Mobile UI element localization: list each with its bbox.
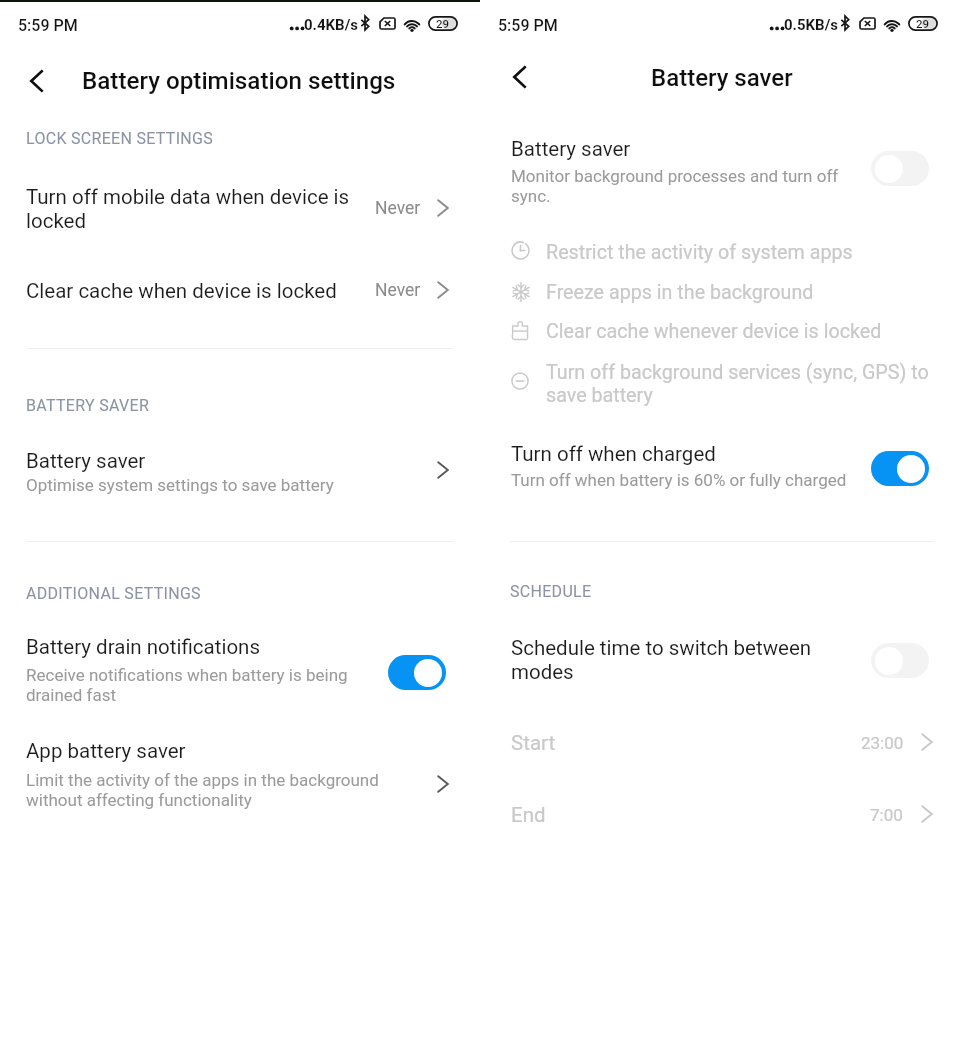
staticText: Turn off mobile data when device is lock…	[26, 185, 356, 233]
button[interactable]: Back	[497, 55, 541, 99]
staticText: App battery saver	[26, 739, 366, 763]
button[interactable]: On	[871, 451, 929, 486]
staticText: LOCK SCREEN SETTINGS	[26, 129, 326, 148]
staticText: Battery optimisation settings	[82, 67, 422, 95]
staticText: 29	[436, 17, 450, 30]
button[interactable]: Off	[871, 151, 929, 186]
staticText: 23:00	[861, 733, 931, 753]
staticText: Never	[375, 280, 445, 301]
staticText: Monitor background processes and turn of…	[511, 166, 846, 206]
staticText: Turn off when battery is 60% or fully ch…	[511, 470, 871, 490]
staticText: Freeze apps in the background	[546, 281, 946, 304]
staticText: 7:00	[870, 805, 940, 825]
staticText: End	[511, 803, 711, 827]
staticText: 5:59 PM	[18, 16, 138, 35]
staticText: 5:59 PM	[498, 16, 618, 35]
staticText: BATTERY SAVER	[26, 396, 326, 415]
staticText: Start	[511, 731, 711, 755]
staticText: Turn off background services (sync, GPS)…	[546, 361, 946, 406]
staticText: Battery saver	[651, 64, 831, 92]
staticText: Receive notifications when battery is be…	[26, 665, 356, 705]
staticText: Limit the activity of the apps in the ba…	[26, 770, 383, 810]
button[interactable]: On	[388, 655, 446, 690]
staticText: 29	[916, 17, 930, 30]
staticText: Schedule time to switch between modes	[511, 636, 831, 684]
staticText: Battery drain notifications	[26, 635, 366, 659]
button[interactable]	[0, 724, 480, 822]
staticText: 0.4KB/s	[304, 16, 374, 34]
button[interactable]	[480, 120, 960, 208]
button[interactable]	[480, 714, 960, 772]
staticText: Clear cache when device is locked	[26, 279, 366, 303]
staticText: Never	[375, 198, 445, 219]
staticText: ADDITIONAL SETTINGS	[26, 584, 326, 603]
staticText: Restrict the activity of system apps	[546, 241, 946, 264]
button[interactable]: Off	[871, 643, 929, 678]
staticText: 0.5KB/s	[784, 16, 854, 34]
staticText: Battery saver	[26, 449, 366, 473]
button[interactable]	[480, 620, 960, 704]
button[interactable]	[480, 432, 960, 508]
button[interactable]	[0, 430, 480, 512]
staticText: Turn off when charged	[511, 442, 851, 466]
button[interactable]	[480, 786, 960, 844]
button[interactable]: Back	[14, 59, 58, 103]
staticText: SCHEDULE	[510, 582, 810, 601]
button[interactable]	[0, 618, 480, 716]
button[interactable]	[0, 168, 480, 250]
staticText: Clear cache whenever device is locked	[546, 320, 946, 343]
button[interactable]	[0, 262, 480, 314]
staticText: Battery saver	[511, 137, 851, 161]
staticText: Optimise system settings to save battery	[26, 475, 386, 495]
